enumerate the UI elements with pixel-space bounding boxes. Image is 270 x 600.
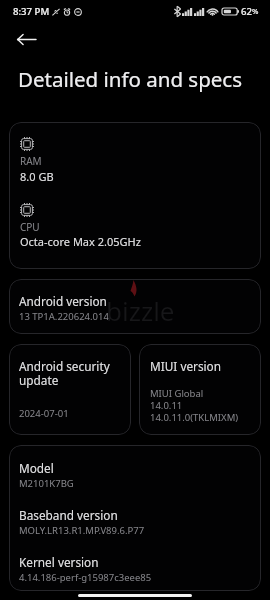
staticText: 13 TP1A.220624.014 bbox=[19, 311, 109, 322]
staticText: MIUI Global 14.0.11 14.0.11.0(TKLMIXM) bbox=[150, 388, 239, 424]
staticText: Detailed info and specs bbox=[18, 68, 243, 92]
staticText: 4.14.186-perf-g15987c3eee85 bbox=[19, 572, 152, 583]
staticText: 62 bbox=[241, 6, 252, 17]
staticText: Model bbox=[19, 462, 54, 476]
button[interactable]: Model bbox=[9, 445, 261, 591]
staticText: 8:37 PM bbox=[13, 6, 50, 17]
button[interactable]: RAM bbox=[9, 122, 261, 269]
staticText: bizzle bbox=[106, 293, 175, 328]
button[interactable]: Back bbox=[10, 23, 42, 55]
button[interactable]: MIUI version bbox=[139, 344, 261, 435]
staticText: % bbox=[252, 7, 259, 16]
staticText: RAM bbox=[20, 156, 42, 168]
button[interactable]: Android security update bbox=[9, 344, 131, 435]
staticText: Octa-core Max 2.05GHz bbox=[20, 236, 141, 249]
staticText: Android version bbox=[19, 295, 107, 309]
staticText: MOLY.LR13.R1.MP.V89.6.P77 bbox=[19, 525, 145, 536]
staticText: CPU bbox=[20, 222, 40, 234]
staticText: Baseband version bbox=[19, 509, 118, 523]
staticText: Android security update bbox=[19, 360, 123, 388]
staticText: 2024-07-01 bbox=[19, 408, 69, 419]
button[interactable]: Android version bbox=[9, 279, 261, 334]
staticText: 8.0 GB bbox=[20, 171, 54, 184]
staticText: MIUI version bbox=[150, 360, 222, 374]
staticText: Kernel version bbox=[19, 556, 99, 570]
staticText: M2101K7BG bbox=[19, 478, 74, 489]
